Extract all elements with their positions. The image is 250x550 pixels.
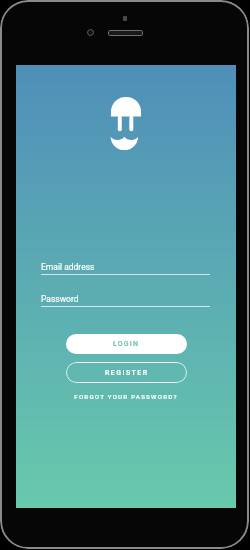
- staticText: REGISTER: [105, 369, 149, 377]
- button[interactable]: FORGOT YOUR PASSWORD?: [56, 390, 196, 403]
- staticText: LOGIN: [113, 340, 140, 348]
- button[interactable]: Email address: [41, 261, 210, 275]
- staticText: Password: [41, 294, 79, 304]
- staticText: FORGOT YOUR PASSWORD?: [74, 393, 178, 400]
- button[interactable]: LOGIN: [66, 334, 187, 354]
- other: App logo: [111, 97, 141, 151]
- staticText: Email address: [41, 262, 95, 272]
- button[interactable]: REGISTER: [66, 362, 187, 383]
- button[interactable]: Password: [41, 293, 210, 307]
